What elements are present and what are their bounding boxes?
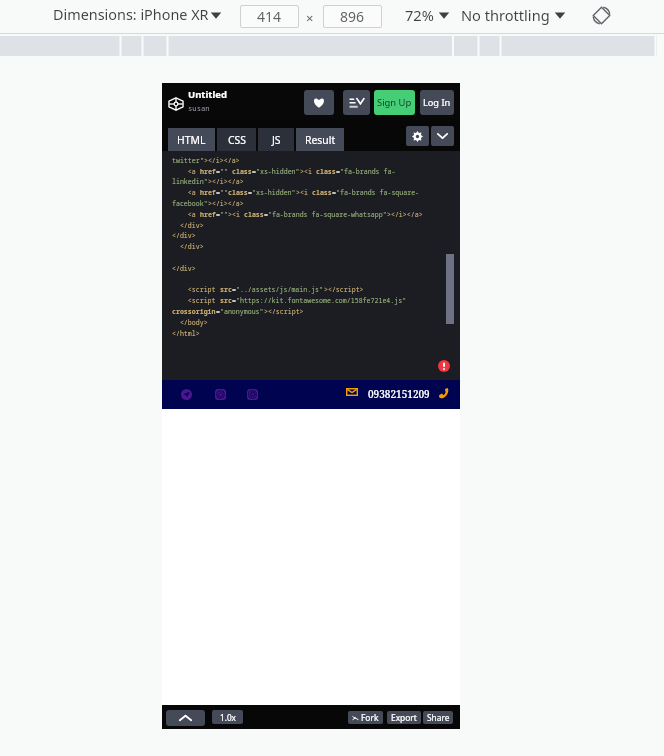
staticText: </div> [172,264,196,273]
staticText: susan [188,103,210,113]
button[interactable]: Expand editor [431,126,454,146]
staticText: "" [220,210,228,219]
staticText: = [332,188,336,197]
staticText: </div> [172,242,204,251]
button[interactable]: Share [423,711,453,724]
staticText: No throttling [461,5,550,25]
button[interactable]: Telegram [181,389,192,400]
staticText: Share [427,712,450,723]
staticText: 09382151209 [368,387,430,401]
button[interactable]: 414 [240,5,299,28]
staticText: = [216,188,220,197]
button[interactable]: Instagram [215,389,226,400]
staticText: class [244,210,264,219]
staticText: = [248,188,252,197]
staticText: class [228,188,248,197]
staticText: ><i [296,188,312,197]
button[interactable]: Rotate device [591,5,612,26]
button[interactable]: Dimensions: iPhone XR [53,5,222,25]
button[interactable]: Sign Up [374,90,415,115]
staticText: = [232,285,236,294]
button[interactable]: JS [258,128,294,151]
staticText: href [200,188,216,197]
staticText: "../assets/js/main.js" [236,285,324,294]
button[interactable]: Fork [348,711,383,724]
staticText: <a [172,188,200,197]
staticText: Sign Up [377,96,412,109]
button[interactable]: 1.0x [212,710,243,724]
staticText: = [264,210,268,219]
staticText: class [232,167,252,176]
staticText: ><i [228,210,244,219]
staticText: CSS [228,133,246,147]
staticText: "xs-hidden" [252,188,296,197]
staticText: ></script> [324,285,364,294]
button[interactable]: HTML [168,128,215,151]
staticText: ></i></a> [387,210,423,219]
staticText: "anonymous" [220,307,264,316]
staticText: Fork [361,712,379,723]
staticText: "" [220,167,228,176]
button[interactable]: Love [304,90,334,115]
staticText: Dimensions: iPhone XR [53,5,209,25]
staticText: = [232,296,236,305]
staticText: JS [272,133,281,147]
button[interactable]: Errors [438,360,450,372]
button[interactable]: Collapse editor [166,710,205,726]
staticText: Untitled [188,88,227,101]
staticText: = [216,210,220,219]
staticText: </div> [172,231,196,240]
button[interactable]: 896 [323,5,382,28]
staticText: ><i [300,167,316,176]
button[interactable]: Export [387,711,421,724]
staticText: Result [305,133,336,147]
staticText: <script [172,296,220,305]
button[interactable]: No throttling [461,5,566,25]
button[interactable]: Email [346,388,358,396]
staticText: </body> [172,318,208,327]
button[interactable]: Log In [420,90,454,115]
button[interactable]: WhatsApp [247,389,258,400]
button[interactable]: 72% [405,5,450,25]
staticText: "></i></a> [200,156,240,165]
staticText: = [336,167,340,176]
staticText: linkedin" [172,177,208,186]
staticText: facebook" [172,199,208,208]
staticText: "fa-brands fa- [340,167,396,176]
staticText: src [220,296,232,305]
staticText: </html> [172,329,200,338]
staticText: src [220,285,232,294]
staticText: × [306,9,314,27]
staticText: 896 [340,7,365,26]
staticText: </div> [172,221,204,230]
staticText: HTML [177,133,206,147]
staticText: <a [172,210,200,219]
button[interactable]: CSS [217,128,256,151]
staticText: 1.0x [220,712,236,723]
staticText: = [216,307,220,316]
staticText: 414 [257,7,282,26]
staticText: "https://kit.fontawesome.com/158fe721e4.… [236,296,407,305]
staticText: href [200,167,216,176]
button[interactable]: Settings [406,126,429,146]
staticText: class [316,167,336,176]
staticText: "" [220,188,228,197]
staticText: ></i></a> [208,199,244,208]
staticText: 72% [405,5,434,25]
staticText: "xs-hidden" [256,167,300,176]
staticText: crossorigin [172,307,216,316]
staticText: = [216,167,220,176]
staticText: Log In [423,96,451,109]
button[interactable]: Result [296,128,344,151]
button[interactable]: Call [438,387,450,399]
button[interactable]: Views [343,90,370,115]
staticText: "fa-brands fa-square- [336,188,420,197]
staticText: class [312,188,332,197]
staticText: <a [172,167,200,176]
staticText: Export [391,712,417,723]
staticText: = [252,167,256,176]
staticText: twitter [172,156,200,165]
staticText: <script [172,285,220,294]
staticText: ></script> [264,307,304,316]
